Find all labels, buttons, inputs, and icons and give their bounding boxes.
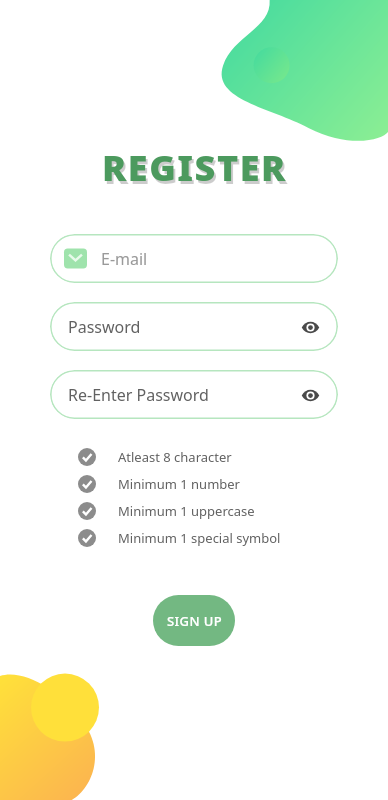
staticText: Re-Enter Password bbox=[68, 384, 298, 406]
button[interactable]: Show password bbox=[298, 383, 322, 407]
button[interactable]: SIGN UP bbox=[153, 595, 235, 646]
button[interactable]: Atleast 8 character bbox=[78, 448, 232, 466]
button[interactable]: Minimum 1 special symbol bbox=[78, 529, 281, 547]
staticText: Minimum 1 special symbol bbox=[118, 529, 281, 547]
button[interactable]: Minimum 1 uppercase bbox=[78, 502, 255, 520]
staticText: E-mail bbox=[101, 248, 322, 270]
staticText: Minimum 1 uppercase bbox=[118, 502, 255, 520]
staticText: REGISTER bbox=[104, 146, 289, 195]
button[interactable]: E-mail bbox=[50, 234, 338, 283]
button[interactable]: Minimum 1 number bbox=[78, 475, 240, 493]
staticText: REGISTER bbox=[102, 143, 287, 192]
staticText: Password bbox=[68, 316, 298, 338]
button[interactable]: Show password bbox=[298, 315, 322, 339]
button[interactable]: Password bbox=[50, 302, 338, 351]
button[interactable]: Re-Enter Password bbox=[50, 370, 338, 419]
staticText: SIGN UP bbox=[167, 612, 222, 630]
staticText: Minimum 1 number bbox=[118, 475, 240, 493]
staticText: Atleast 8 character bbox=[118, 448, 232, 466]
